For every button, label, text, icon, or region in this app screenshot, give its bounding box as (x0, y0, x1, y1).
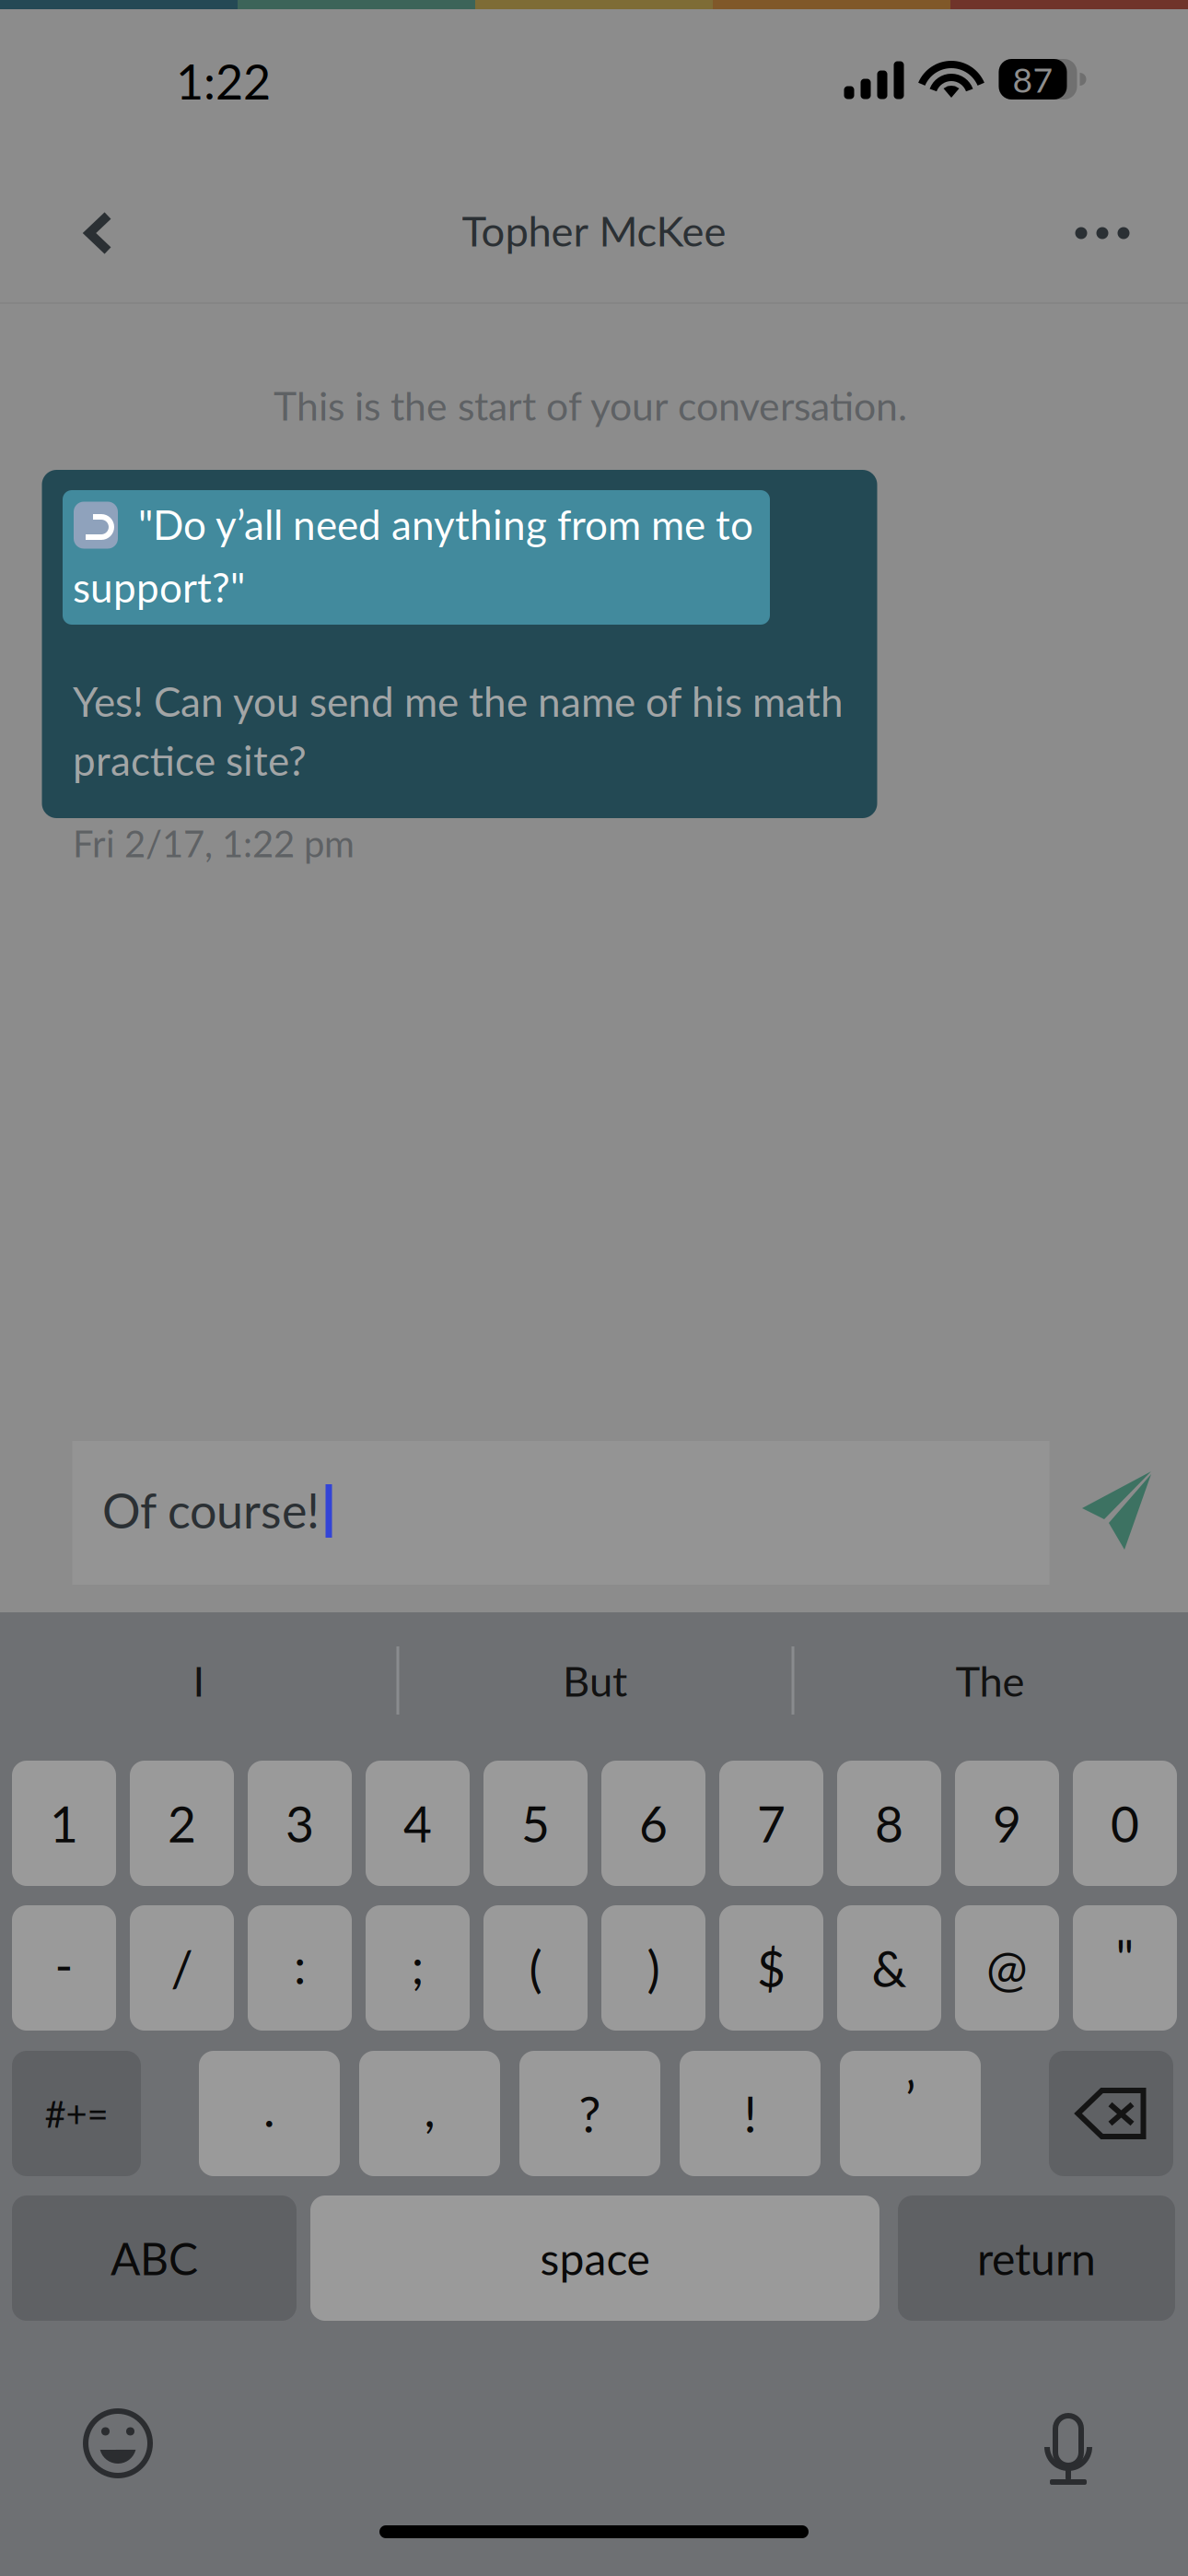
staticText: / (171, 1938, 193, 1997)
staticText: But (563, 1655, 627, 1706)
staticText: space (540, 2232, 650, 2285)
button[interactable]: ) (601, 1905, 705, 2031)
button[interactable]: Emoji keyboard (67, 2393, 169, 2494)
button[interactable]: Dictation (1018, 2393, 1119, 2494)
button[interactable]: ? (519, 2051, 660, 2176)
button[interactable]: Delete (1049, 2051, 1173, 2176)
button[interactable]: " (1073, 1905, 1177, 2031)
staticText: 7 (757, 1794, 786, 1853)
button[interactable]: - (12, 1905, 116, 2031)
staticText: $ (757, 1938, 786, 1997)
staticText: . (263, 2078, 275, 2137)
staticText: 87 (1013, 59, 1053, 100)
staticText: 2 (168, 1794, 196, 1853)
button[interactable]: Send (1062, 1451, 1172, 1571)
staticText: ! (744, 2084, 757, 2143)
staticText: Topher McKee (462, 205, 726, 255)
button[interactable]: @ (955, 1905, 1059, 2031)
staticText: ABC (111, 2232, 198, 2285)
button[interactable]: ; (366, 1905, 470, 2031)
staticText: ? (579, 2084, 601, 2143)
button[interactable]: 0 (1073, 1761, 1177, 1886)
staticText: The (955, 1655, 1025, 1706)
button[interactable]: 1 (12, 1761, 116, 1886)
staticText: return (977, 2232, 1096, 2285)
button[interactable]: More options (1047, 178, 1158, 288)
staticText: 0 (1111, 1794, 1139, 1853)
staticText: Fri 2/17, 1:22 pm (73, 821, 355, 865)
staticText: This is the start of your conversation. (274, 382, 907, 429)
staticText: " (1116, 1927, 1134, 1986)
button[interactable]: 2 (130, 1761, 234, 1886)
button[interactable]: 8 (837, 1761, 941, 1886)
button[interactable]: 5 (483, 1761, 588, 1886)
staticText: Yes! Can you send me the name of his mat… (73, 677, 844, 725)
button[interactable]: , (359, 2051, 500, 2176)
button[interactable]: But (399, 1625, 791, 1736)
staticText: ( (529, 1938, 542, 1997)
button[interactable]: . (199, 2051, 340, 2176)
staticText: 1 (50, 1794, 78, 1853)
button[interactable]: ! (680, 2051, 821, 2176)
staticText: : (294, 1936, 306, 1995)
button[interactable]: 3 (248, 1761, 352, 1886)
staticText: practice site? (73, 736, 307, 784)
staticText: #+= (45, 2091, 108, 2136)
button[interactable]: #+= (12, 2051, 141, 2176)
staticText: ) (647, 1938, 660, 1997)
button[interactable]: ’ (840, 2051, 981, 2176)
staticText: 1:22 (176, 52, 271, 110)
staticText: 5 (521, 1794, 550, 1853)
staticText: support?" (73, 563, 245, 611)
button[interactable]: : (248, 1905, 352, 2031)
button[interactable]: 6 (601, 1761, 705, 1886)
staticText: & (872, 1938, 907, 1997)
staticText: , (424, 2078, 435, 2137)
button[interactable]: $ (719, 1905, 823, 2031)
staticText: ; (411, 1936, 424, 1995)
staticText: I (193, 1655, 205, 1706)
staticText: 8 (875, 1794, 903, 1853)
staticText: ’ (905, 2069, 915, 2128)
staticText: 6 (639, 1794, 668, 1853)
button[interactable]: 9 (955, 1761, 1059, 1886)
button[interactable]: The (794, 1625, 1186, 1736)
button[interactable]: return (898, 2195, 1175, 2321)
staticText: - (55, 1935, 73, 1994)
button[interactable]: / (130, 1905, 234, 2031)
button[interactable]: I (1, 1625, 397, 1736)
button[interactable]: space (310, 2195, 879, 2321)
staticText: "Do y’all need anything from me to (138, 500, 753, 549)
staticText: @ (986, 1938, 1028, 1997)
staticText: 3 (285, 1794, 314, 1853)
button[interactable]: & (837, 1905, 941, 2031)
staticText: 9 (993, 1794, 1021, 1853)
button[interactable]: ( (483, 1905, 588, 2031)
button[interactable]: 4 (366, 1761, 470, 1886)
button[interactable]: Back (39, 178, 158, 288)
staticText: Of course! (102, 1481, 320, 1539)
staticText: 4 (403, 1794, 432, 1853)
button[interactable]: ABC (12, 2195, 297, 2321)
button[interactable]: 7 (719, 1761, 823, 1886)
